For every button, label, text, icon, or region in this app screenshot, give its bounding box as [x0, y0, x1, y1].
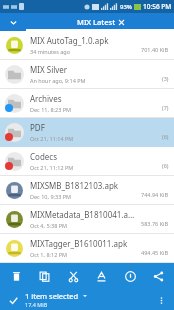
staticText: MIX Latest	[77, 17, 116, 27]
staticText: 10:56 PM	[143, 2, 172, 11]
button[interactable]: Selection	[5, 292, 21, 308]
button[interactable]: Info	[119, 265, 141, 287]
staticText: 93%	[120, 3, 132, 11]
staticText: 17.4 MiB	[25, 301, 48, 308]
staticText: 1 item selected	[25, 291, 79, 301]
button[interactable]: MIXSMB_B1812103.apk	[0, 176, 174, 205]
staticText: MIXMetadata_B1810041.apk	[30, 209, 137, 220]
staticText: 583.76 KiB	[141, 220, 169, 227]
staticText: Codecs	[30, 151, 57, 162]
staticText: (6)	[162, 162, 169, 169]
button[interactable]: MIX Silver	[0, 60, 174, 89]
button[interactable]: MIXMetadata_B1810041.apk	[0, 205, 174, 234]
staticText: Oct 21, 11:12 PM	[30, 164, 74, 171]
button[interactable]: Delete	[5, 265, 27, 287]
button[interactable]: MIXTagger_B1610011.apk	[0, 234, 174, 263]
button[interactable]: Share	[147, 265, 169, 287]
button[interactable]: Copy	[33, 265, 55, 287]
staticText: Dec 10, 9:33 PM	[30, 193, 72, 200]
button[interactable]: Expand tabs	[0, 13, 26, 31]
staticText: MIX AutoTag_1.0.apk	[30, 35, 109, 46]
button[interactable]: MIX AutoTag_1.0.apk	[0, 31, 174, 60]
staticText: Dec 11, 8:23 PM	[30, 106, 72, 113]
staticText: An hour ago, 9:14 PM	[30, 77, 86, 84]
staticText: PDF	[30, 122, 45, 133]
button[interactable]: PDF	[0, 118, 174, 147]
staticText: Oct 4, 5:38 PM	[30, 222, 68, 229]
staticText: 34 minutes ago	[30, 48, 71, 55]
staticText: (7)	[162, 104, 169, 111]
button[interactable]: Codecs	[0, 147, 174, 176]
button[interactable]: MIX Latest	[26, 13, 174, 31]
staticText: 701.40 KiB	[141, 46, 169, 53]
button[interactable]: Cut	[62, 265, 84, 287]
staticText: MIXTagger_B1610011.apk	[30, 238, 128, 249]
staticText: Archives	[30, 93, 62, 104]
staticText: 744.94 KiB	[141, 191, 169, 198]
button[interactable]: Archives	[0, 89, 174, 118]
button[interactable]: 1 item selected	[25, 291, 153, 308]
staticText: 494.45 KiB	[141, 249, 169, 256]
button[interactable]: Rename	[90, 265, 112, 287]
staticText: MIX Silver	[30, 64, 68, 75]
staticText: Oct 21, 11:14 PM	[30, 135, 74, 142]
button[interactable]: More options	[153, 292, 169, 308]
staticText: MIXSMB_B1812103.apk	[30, 180, 119, 191]
staticText: (3)	[162, 75, 169, 82]
staticText: Oct 1, 8:12 PM	[30, 251, 68, 258]
staticText: (6)	[162, 133, 169, 140]
